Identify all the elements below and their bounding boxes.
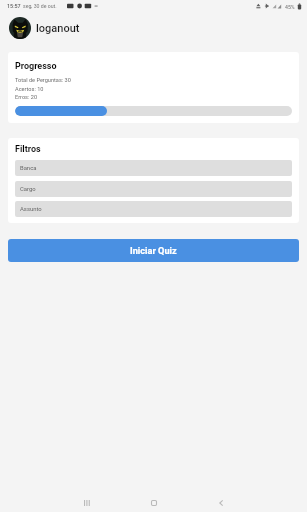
button[interactable]: Recent apps	[70, 500, 104, 512]
button[interactable]: Profile	[9, 17, 31, 39]
staticText: Total de Perguntas: 30 Acertos: 10 Erros…	[15, 77, 71, 100]
button[interactable]: Banca	[15, 160, 292, 176]
staticText: Assunto	[20, 206, 42, 213]
button[interactable]: Iniciar Quiz	[8, 239, 299, 262]
staticText: Filtros	[15, 144, 41, 155]
staticText: Progresso	[15, 61, 57, 72]
staticText: Iniciar Quiz	[130, 245, 177, 256]
staticText: 45%	[285, 4, 295, 10]
staticText: seg, 30 de out.	[23, 3, 57, 9]
staticText: 15:57	[7, 3, 21, 9]
staticText: Banca	[20, 165, 37, 172]
staticText: loganout	[36, 22, 80, 35]
staticText: Cargo	[20, 186, 36, 193]
button[interactable]: Cargo	[15, 181, 292, 197]
button[interactable]: Assunto	[15, 201, 292, 217]
button[interactable]: Back	[204, 500, 238, 512]
button[interactable]: Home	[137, 500, 171, 512]
